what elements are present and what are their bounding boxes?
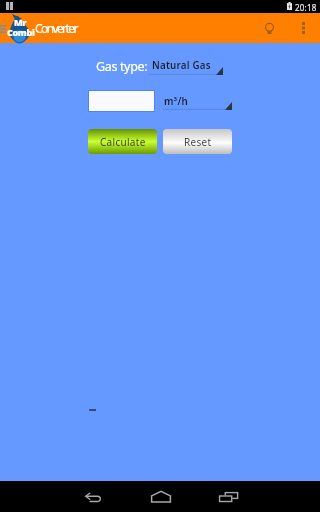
staticText: Calculate <box>100 135 146 149</box>
button[interactable]: Open navigation drawer <box>0 13 33 43</box>
button[interactable]: Back <box>72 481 113 512</box>
button[interactable]: Natural Gas <box>148 59 223 76</box>
button[interactable]: More options <box>289 14 317 42</box>
button[interactable]: m³/h <box>163 94 232 111</box>
staticText: Mr <box>14 16 27 28</box>
button[interactable]: Recent apps <box>208 481 249 512</box>
button[interactable]: Tips <box>255 15 283 43</box>
staticText: 20:18 <box>295 2 317 13</box>
button[interactable]: Reset <box>163 129 232 154</box>
staticText: Natural Gas <box>152 59 211 72</box>
staticText: Gas type: <box>96 58 148 75</box>
button[interactable]: Home <box>140 481 181 512</box>
staticText: Reset <box>184 135 212 149</box>
staticText: Converter <box>35 20 77 36</box>
staticText: m³/h <box>164 95 188 108</box>
staticText: Combi <box>7 26 35 38</box>
button[interactable]: Calculate <box>88 129 157 154</box>
